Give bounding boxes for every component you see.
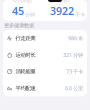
staticText: 平均配速 (15, 85, 35, 91)
staticText: 更多健康数据 (4, 22, 34, 29)
staticText: 消耗能量 (15, 68, 35, 75)
staticText: 累计消耗 (50, 0, 70, 4)
staticText: 分钟 (25, 11, 35, 18)
staticText: 千卡 (75, 11, 85, 18)
staticText: 986 米 (68, 35, 83, 42)
staticText: 73 千卡 (66, 68, 83, 75)
staticText: 3922 (50, 4, 74, 18)
staticText: 行走距离 (15, 35, 35, 42)
staticText: 321 分钟 (63, 51, 83, 58)
staticText: 45 (12, 4, 24, 18)
staticText: 今日步数 (12, 0, 32, 4)
button[interactable]: 行走距离 (3, 30, 87, 47)
button[interactable]: 运动时长 (3, 47, 87, 63)
button[interactable]: 消耗能量 (3, 63, 87, 80)
staticText: 6.0 公里 (65, 85, 83, 92)
staticText: 运动时长 (15, 52, 35, 58)
button[interactable]: 平均配速 (3, 80, 87, 96)
